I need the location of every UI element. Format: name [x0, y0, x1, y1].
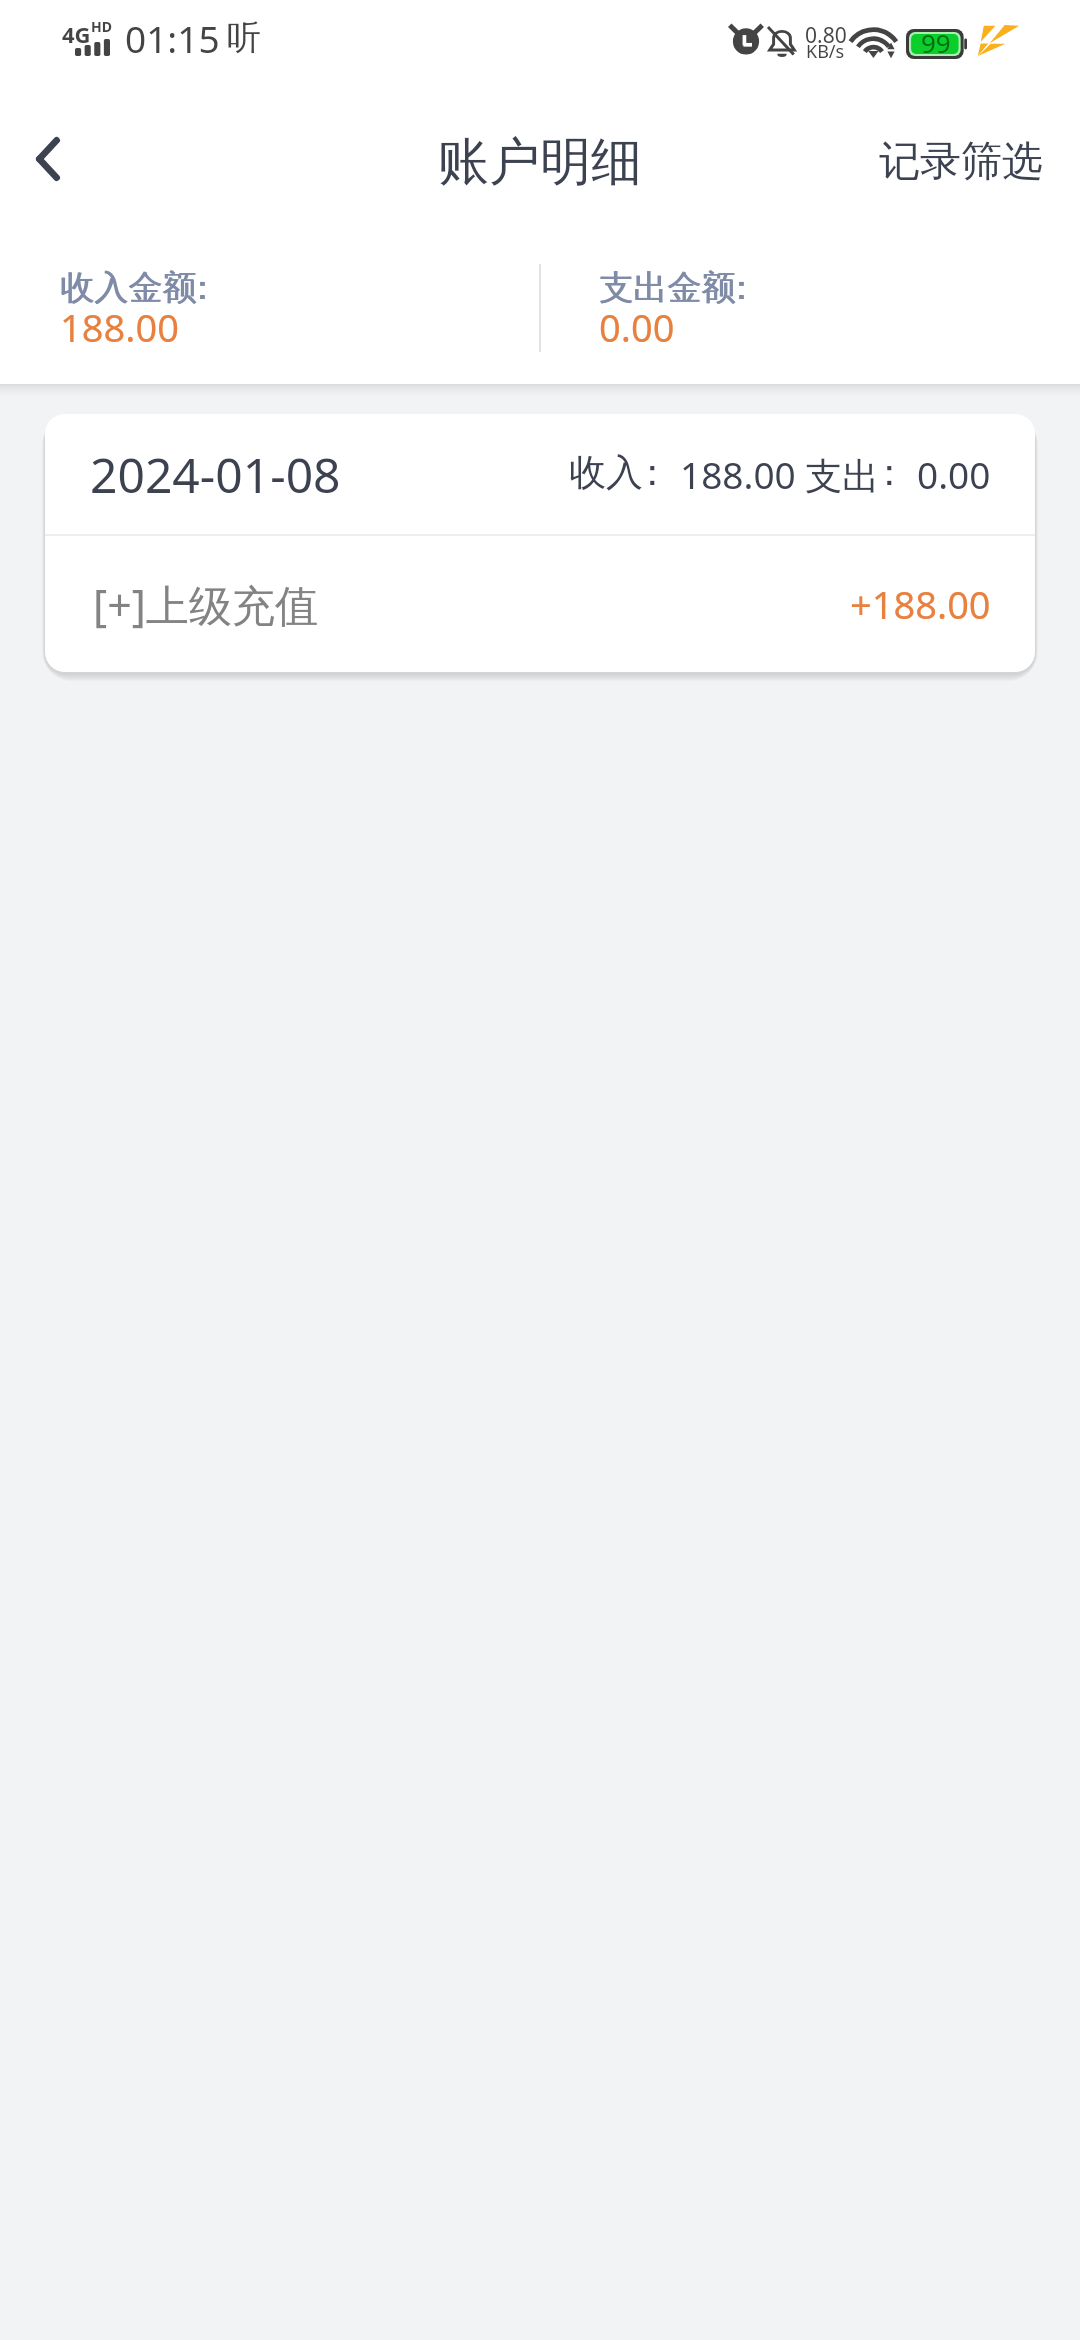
staticText: [+]上级充值 — [93, 575, 318, 634]
staticText: 支出金额 — [599, 266, 735, 309]
staticText: 01:15 — [125, 13, 220, 63]
staticText: 0.00 — [917, 449, 991, 499]
staticText: 账户明细 — [438, 130, 642, 194]
staticText: KB/s — [806, 39, 845, 64]
staticText: ： — [724, 266, 758, 309]
staticText: 4G — [62, 19, 91, 49]
button[interactable]: [+]上级充值 — [45, 536, 1035, 672]
staticText: 0.00 — [599, 301, 675, 353]
staticText: 支出金额 — [600, 266, 736, 309]
staticText: HD — [91, 17, 112, 36]
staticText: ： — [185, 266, 219, 309]
staticText: 188.00 — [60, 301, 179, 353]
staticText: 99 — [921, 25, 951, 60]
button[interactable]: Back — [0, 104, 103, 214]
staticText: 0.80 — [805, 21, 847, 50]
staticText: 听 — [227, 16, 261, 59]
staticText: 188.00 支出 — [680, 449, 880, 500]
staticText: ： — [725, 266, 759, 309]
staticText: +188.00 — [850, 578, 991, 630]
staticText: 2024-01-08 — [90, 442, 341, 507]
staticText: ： — [634, 449, 671, 496]
staticText: ： — [186, 266, 220, 309]
staticText: 收入 — [569, 449, 643, 496]
staticText: 记录筛选 — [879, 136, 1043, 188]
staticText: ： — [871, 449, 908, 496]
staticText: 收入金额 — [60, 266, 196, 309]
staticText: 收入金额 — [61, 266, 197, 309]
button[interactable]: 记录筛选 — [841, 108, 1080, 216]
button[interactable]: 2024-01-08 — [45, 414, 1035, 534]
